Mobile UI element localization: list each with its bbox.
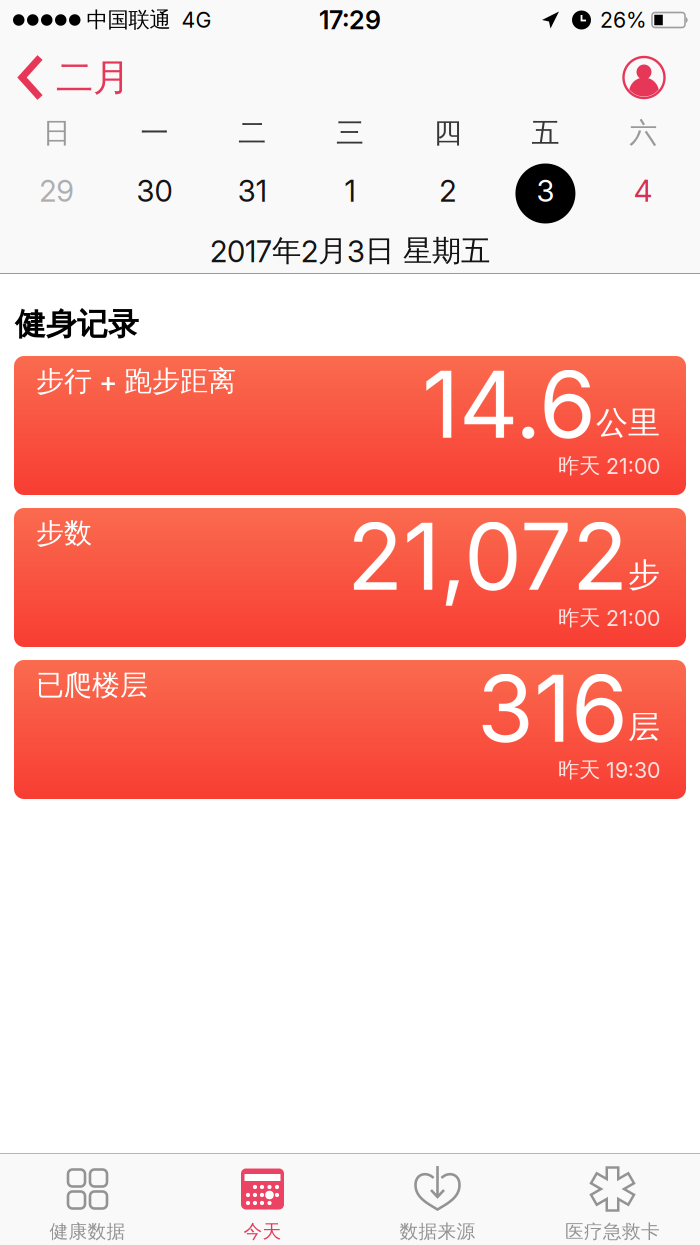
staticText: 已爬楼层	[36, 668, 148, 702]
staticText: 一	[141, 116, 169, 150]
staticText: 二月	[56, 55, 130, 100]
staticText: 二	[238, 116, 266, 150]
staticText: 29	[39, 174, 74, 208]
button[interactable]: 2	[399, 157, 497, 235]
staticText: 昨天 19:30	[558, 757, 660, 783]
staticText: 1	[344, 174, 355, 208]
button[interactable]: 步行 + 跑步距离	[14, 356, 686, 495]
staticText: 31	[238, 174, 267, 208]
staticText: 昨天 21:00	[558, 605, 660, 631]
button[interactable]: 1	[301, 157, 399, 235]
staticText: 3	[536, 174, 554, 208]
staticText: 健身记录	[15, 305, 139, 343]
button[interactable]: 今天	[175, 1168, 350, 1243]
button[interactable]: 医疗急救卡	[525, 1168, 700, 1243]
button[interactable]: 二月	[0, 54, 130, 100]
staticText: 日	[43, 116, 71, 150]
staticText: 30	[137, 174, 173, 208]
staticText: 公里	[596, 403, 660, 442]
staticText: 数据来源	[399, 1220, 475, 1243]
staticText: 步行 + 跑步距离	[36, 364, 236, 398]
staticText: 层	[628, 707, 660, 746]
staticText: 步	[628, 555, 660, 594]
staticText: 4	[634, 174, 653, 208]
staticText: 五	[531, 116, 559, 150]
staticText: 步数	[36, 516, 92, 550]
staticText: 2	[439, 174, 456, 208]
staticText: 2017年2月3日 星期五	[210, 233, 490, 269]
staticText: 四	[434, 116, 462, 150]
button[interactable]: 4	[594, 157, 692, 235]
button[interactable]: 步数	[14, 508, 686, 647]
button[interactable]: 健康数据	[0, 1168, 175, 1243]
staticText: 4G	[181, 7, 211, 33]
button[interactable]: 已爬楼层	[14, 660, 686, 799]
staticText: 昨天 21:00	[558, 453, 660, 479]
staticText: 316	[477, 654, 628, 762]
staticText: 14.6	[422, 350, 596, 458]
button[interactable]: 个人资料	[622, 55, 700, 99]
button[interactable]: 数据来源	[350, 1168, 525, 1243]
staticText: 今天	[243, 1220, 281, 1243]
staticText: 17:29	[319, 5, 381, 35]
button[interactable]: 29	[8, 157, 106, 235]
staticText: 26%	[600, 7, 647, 33]
staticText: 健康数据	[49, 1220, 125, 1243]
button[interactable]: 31	[203, 157, 301, 235]
button[interactable]: 30	[106, 157, 203, 235]
staticText: 中国联通	[86, 7, 170, 33]
staticText: 六	[629, 116, 657, 150]
staticText: 三	[336, 116, 364, 150]
staticText: 21,072	[347, 502, 628, 610]
staticText: 医疗急救卡	[565, 1220, 660, 1243]
button[interactable]: 3	[497, 157, 594, 235]
